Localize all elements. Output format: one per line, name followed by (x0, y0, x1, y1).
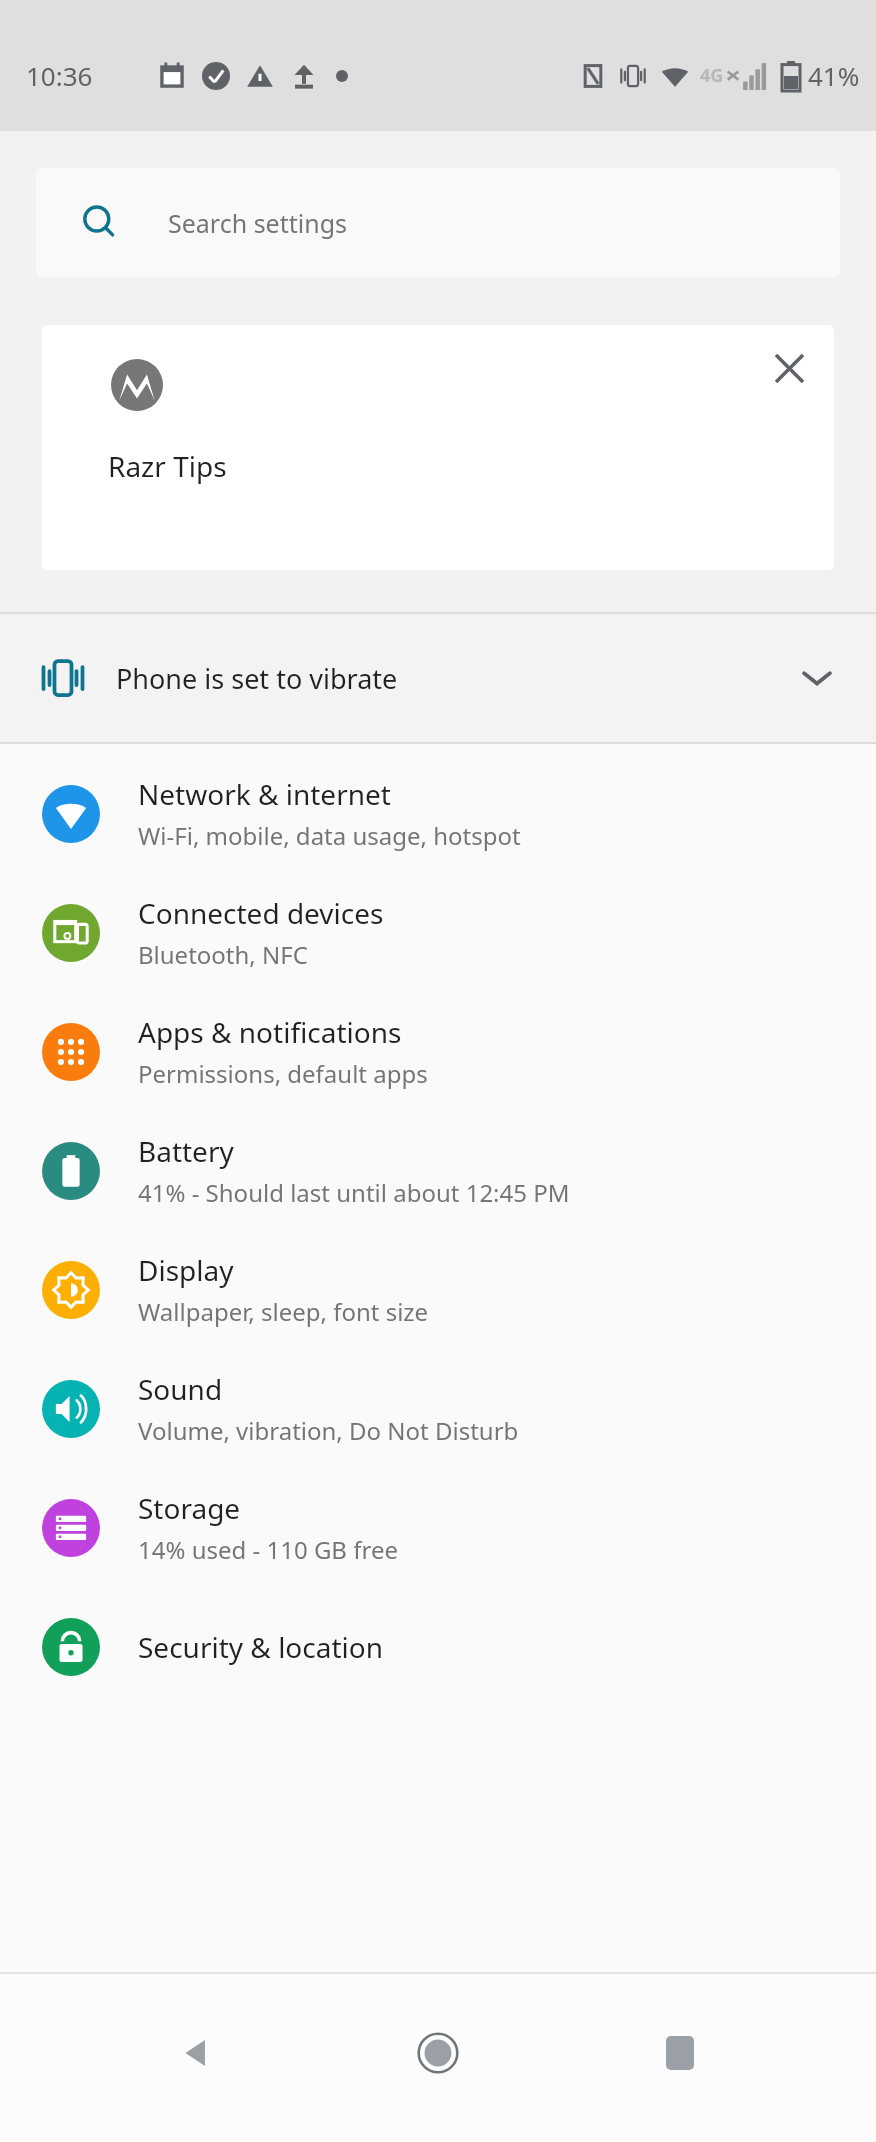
staticText: Sound (138, 1370, 223, 1408)
button[interactable]: Apps & notifications (0, 992, 876, 1111)
staticText: 41% - Should last until about 12:45 PM (138, 1176, 570, 1209)
staticText: Connected devices (138, 894, 384, 932)
staticText: Security & location (138, 1628, 384, 1666)
staticText: 4G (700, 63, 724, 88)
button[interactable]: Storage (0, 1468, 876, 1587)
staticText: 10:36 (26, 58, 93, 93)
staticText: Storage (138, 1489, 241, 1527)
button[interactable]: Sound (0, 1349, 876, 1468)
staticText: Display (138, 1251, 234, 1289)
staticText: Apps & notifications (138, 1013, 402, 1051)
staticText: Phone is set to vibrate (116, 660, 800, 697)
staticText: Volume, vibration, Do Not Disturb (138, 1414, 519, 1447)
staticText: 41% (808, 58, 860, 93)
button[interactable]: Recents (635, 2008, 725, 2098)
button[interactable]: Connected devices (0, 873, 876, 992)
staticText: Battery (138, 1132, 234, 1170)
staticText: Razr Tips (108, 447, 227, 485)
button[interactable]: Network & internet (0, 754, 876, 873)
button[interactable]: Phone is set to vibrate (0, 614, 876, 742)
button[interactable]: Home (393, 2008, 483, 2098)
staticText: Network & internet (138, 775, 391, 813)
staticText: Search settings (168, 206, 348, 240)
button[interactable]: Battery (0, 1111, 876, 1230)
button[interactable]: Back (152, 2008, 242, 2098)
staticText: 14% used - 110 GB free (138, 1533, 398, 1566)
button[interactable]: Security & location (0, 1587, 876, 1706)
staticText: Wi-Fi, mobile, data usage, hotspot (138, 819, 521, 852)
staticText: Wallpaper, sleep, font size (138, 1295, 429, 1328)
button[interactable]: Display (0, 1230, 876, 1349)
button[interactable]: Search settings (36, 168, 840, 277)
staticText: Permissions, default apps (138, 1057, 428, 1090)
button[interactable]: Close (42, 325, 834, 570)
button[interactable]: Close (758, 337, 820, 399)
staticText: Bluetooth, NFC (138, 938, 308, 971)
